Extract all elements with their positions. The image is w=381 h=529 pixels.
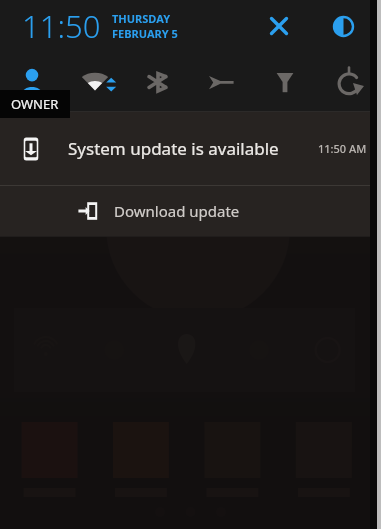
staticText: Download update — [114, 201, 240, 221]
staticText: THURSDAY — [112, 11, 171, 26]
staticText: 11:50 AM — [318, 141, 367, 156]
staticText: System update is available — [68, 137, 279, 160]
button[interactable]: Clear all notifications — [259, 6, 299, 46]
staticText: OWNER — [11, 95, 59, 113]
button[interactable]: Brightness — [323, 6, 363, 46]
staticText: 11:50 — [22, 5, 101, 47]
staticText: FEBRUARY 5 — [112, 26, 178, 41]
button[interactable]: Auto-rotate — [317, 52, 381, 111]
button[interactable]: User — [0, 52, 63, 111]
button[interactable]: OWNER — [0, 90, 70, 118]
button[interactable]: Airplane mode — [189, 52, 253, 111]
button[interactable]: Flashlight — [253, 52, 317, 111]
button[interactable]: Download update — [0, 186, 381, 236]
button[interactable]: Wi-Fi — [63, 52, 126, 111]
button[interactable]: Bluetooth — [126, 52, 189, 111]
button[interactable]: System update is available — [0, 112, 381, 185]
